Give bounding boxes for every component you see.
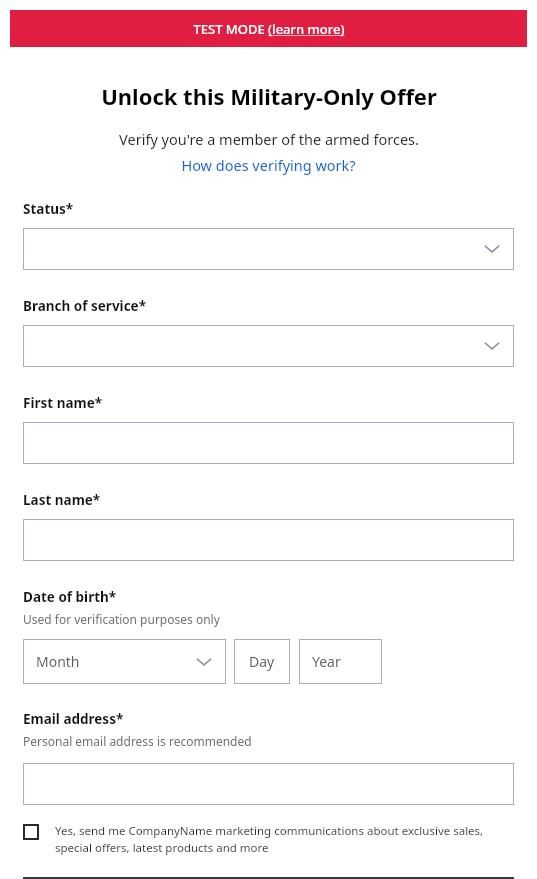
staticText: Month <box>36 652 80 671</box>
staticText: Used for verification purposes only <box>23 611 220 627</box>
staticText: Branch of service* <box>23 297 146 315</box>
button[interactable]: TEST MODE (learn more) <box>10 10 527 47</box>
staticText: TEST MODE (learn more) <box>193 20 345 38</box>
button[interactable]: Yes, send me CompanyName marketing commu… <box>23 823 514 855</box>
staticText: Personal email address is recommended <box>23 733 252 749</box>
staticText: Day <box>249 652 275 671</box>
button[interactable] <box>23 228 514 270</box>
staticText: Email address* <box>23 710 124 728</box>
staticText: Yes, send me CompanyName marketing commu… <box>55 823 514 855</box>
button[interactable]: Month <box>23 639 226 684</box>
button[interactable] <box>23 763 514 805</box>
staticText: Status* <box>23 200 74 218</box>
staticText: Date of birth* <box>23 588 117 606</box>
staticText: Unlock this Military-Only Offer <box>101 81 437 111</box>
button[interactable]: Day <box>234 639 290 684</box>
button[interactable] <box>23 325 514 367</box>
button[interactable] <box>23 422 514 464</box>
button[interactable] <box>23 519 514 561</box>
staticText: Verify you're a member of the armed forc… <box>119 129 419 149</box>
staticText: Year <box>312 652 341 671</box>
button[interactable]: Year <box>299 639 382 684</box>
staticText: Last name* <box>23 491 101 509</box>
button[interactable]: How does verifying work? <box>181 155 356 175</box>
staticText: First name* <box>23 394 103 412</box>
